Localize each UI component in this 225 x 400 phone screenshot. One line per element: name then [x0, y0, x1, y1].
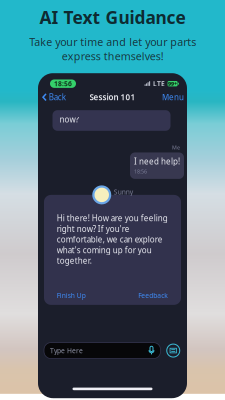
staticText: 18:56 [134, 168, 147, 175]
staticText: Sunny [114, 187, 133, 196]
staticText: Session 101 [89, 92, 135, 102]
button[interactable]: Send [165, 343, 181, 358]
staticText: AI Text Guidance [39, 6, 185, 29]
button[interactable]: Back [42, 90, 66, 104]
staticText: 99+ [168, 80, 177, 87]
staticText: Back [49, 92, 66, 102]
staticText: Finish Up [57, 291, 86, 300]
staticText: I need help! [134, 156, 180, 167]
staticText: LTE [153, 79, 165, 88]
staticText: Take your time and let your parts expres… [29, 35, 196, 63]
staticText: 18:56 [54, 79, 72, 88]
button[interactable]: Finish Up [57, 289, 86, 302]
staticText: now? [59, 114, 78, 125]
staticText: Menu [162, 92, 184, 102]
staticText: Type Here [50, 346, 83, 355]
button[interactable]: Menu [162, 90, 184, 104]
button[interactable]: Feedback [138, 289, 168, 302]
staticText: Me [172, 144, 180, 151]
staticText: Hi there! How are you feeling right now?… [57, 213, 168, 266]
staticText: Feedback [138, 291, 168, 300]
